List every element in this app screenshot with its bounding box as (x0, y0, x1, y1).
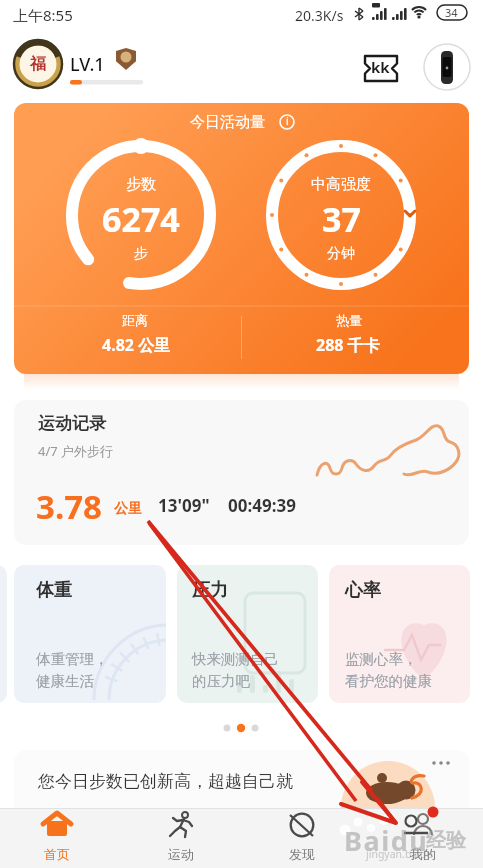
staticText: 6274 (102, 196, 180, 242)
staticText: 步 (134, 245, 148, 263)
staticText: 分钟 (327, 245, 355, 263)
staticText: i (286, 114, 289, 128)
staticText: 体重 (36, 579, 72, 602)
staticText: 发现 (289, 846, 315, 862)
staticText: 心率 (345, 579, 381, 602)
staticText: 3.78 (36, 484, 102, 529)
staticText: 上午8:55 (13, 5, 73, 25)
staticText: 运动 (168, 846, 194, 862)
staticText: 健康生活 (36, 672, 94, 690)
staticText: 00:49:39 (228, 494, 296, 517)
staticText: 今日活动量 (190, 113, 265, 132)
staticText: 热量 (336, 312, 362, 328)
staticText: kk (371, 57, 390, 77)
staticText: 公里 (114, 500, 142, 518)
staticText: 288 千卡 (316, 334, 380, 356)
staticText: LV.1 (70, 52, 105, 77)
staticText: 首页 (44, 846, 70, 862)
staticText: 4/7 户外步行 (38, 442, 114, 460)
staticText: 您今日步数已创新高，超越自己就 (38, 771, 293, 792)
staticText: 经验 (426, 828, 466, 853)
staticText: 4.82 公里 (102, 334, 171, 356)
staticText: jingyan.baidu. (366, 847, 436, 861)
staticText: 压力 (192, 579, 228, 602)
staticText: 我的 (410, 846, 436, 862)
staticText: 监测心率， (345, 650, 418, 668)
staticText: 20.3K/s (295, 6, 344, 25)
staticText: 福 (30, 54, 46, 74)
staticText: Baidu (344, 822, 429, 859)
staticText: 运动记录 (38, 413, 106, 434)
staticText: 看护您的健康 (345, 672, 432, 690)
staticText: 34 (445, 5, 458, 20)
staticText: 中高强度 (311, 175, 371, 194)
staticText: 的压力吧 (192, 672, 250, 690)
staticText: 距离 (122, 312, 148, 328)
staticText: 体重管理， (36, 650, 109, 668)
staticText: 37 (322, 196, 361, 242)
staticText: 13'09" (158, 494, 210, 517)
staticText: 步数 (126, 175, 156, 194)
staticText: 快来测测自己 (192, 650, 279, 668)
